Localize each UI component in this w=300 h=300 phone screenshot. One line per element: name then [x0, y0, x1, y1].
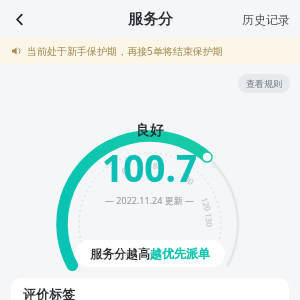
staticText: 60: [119, 162, 133, 176]
staticText: 120: [200, 196, 214, 212]
staticText: 良好: [136, 122, 164, 140]
staticText: 查看规则: [246, 78, 282, 89]
staticText: 服务分越高越优先派单: [90, 246, 210, 261]
staticText: 80: [152, 159, 164, 171]
staticText: 历史记录: [242, 12, 290, 27]
button[interactable]: Back: [5, 5, 33, 33]
staticText: 100.7: [102, 142, 198, 192]
staticText: 100: [179, 170, 197, 186]
staticText: — 2022.11.24 更新 —: [105, 194, 195, 206]
staticText: 评价标签: [23, 286, 75, 300]
staticText: 当前处于新手保护期，再接5单将结束保护期: [27, 44, 223, 58]
button[interactable]: 查看规则: [238, 74, 290, 93]
staticText: 服务分: [128, 10, 173, 29]
staticText: 130: [205, 213, 215, 227]
staticText: 150: [195, 243, 211, 261]
button[interactable]: 评价标签: [11, 278, 289, 300]
button[interactable]: 当前处于新手保护期，再接5单将结束保护期: [0, 38, 300, 64]
button[interactable]: 历史记录: [232, 5, 300, 34]
staticText: 0: [91, 247, 102, 256]
button[interactable]: 服务分越高越优先派单: [75, 240, 225, 267]
